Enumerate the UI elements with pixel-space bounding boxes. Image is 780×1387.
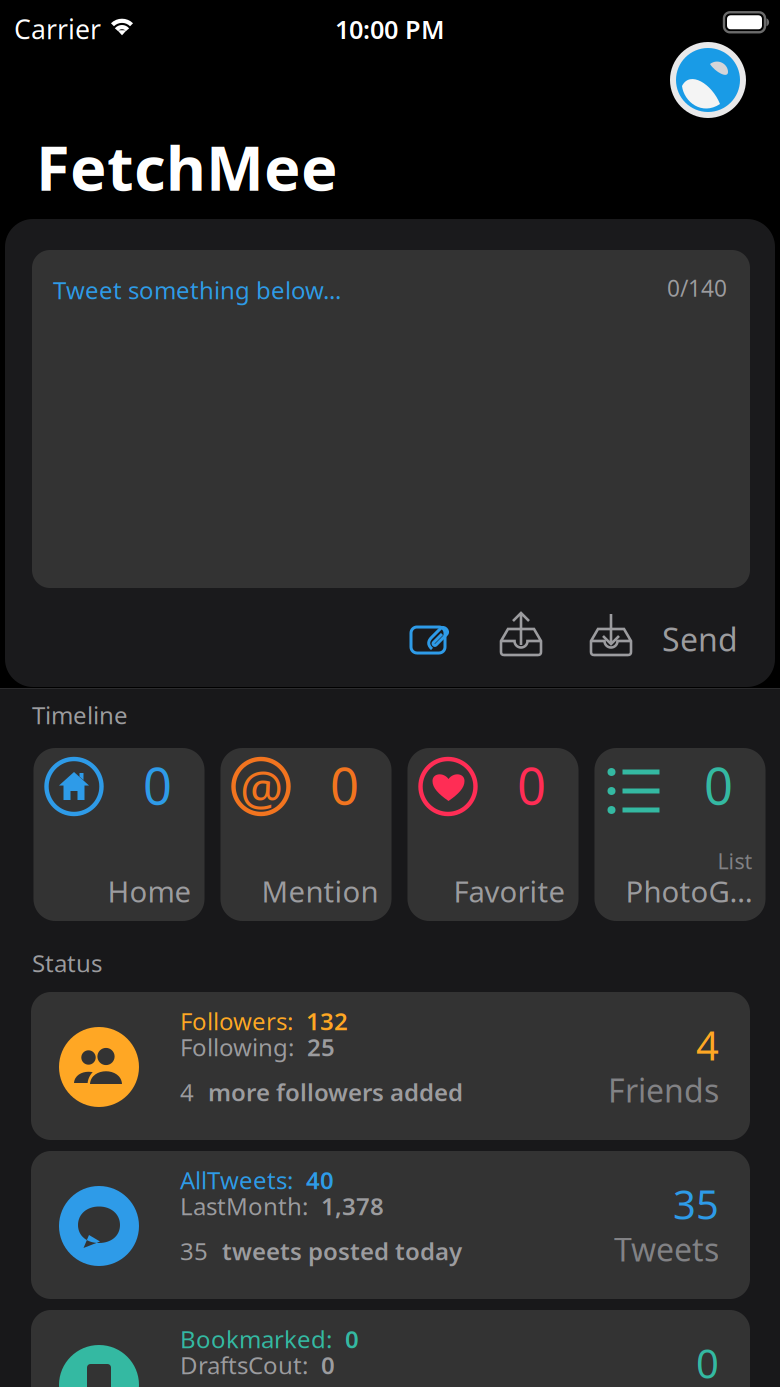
staticText: Bookmarked: [180, 1323, 332, 1355]
staticText: Send [662, 618, 738, 660]
button[interactable]: AllTweets: [31, 1151, 750, 1299]
button[interactable]: Attach media [411, 619, 453, 657]
button[interactable]: Bookmarked: [31, 1310, 750, 1387]
staticText: Mention [261, 871, 378, 910]
staticText: 4 [696, 1018, 719, 1071]
staticText: Followers: [180, 1005, 293, 1037]
staticText: Tweet something below... [53, 274, 341, 306]
staticText: 25 [307, 1031, 335, 1063]
button[interactable]: 0 [594, 748, 765, 921]
button[interactable]: Account [670, 42, 746, 118]
staticText: Favorite [453, 871, 565, 910]
button[interactable]: @ [220, 748, 391, 921]
staticText: 10:00 PM [335, 12, 445, 46]
staticText: Status [32, 947, 102, 979]
staticText: 0 [321, 1349, 335, 1381]
staticText: LastMonth: [180, 1190, 308, 1222]
staticText: Following: [180, 1031, 294, 1063]
button[interactable]: 0 [407, 748, 578, 921]
staticText: 40 [306, 1164, 334, 1196]
staticText: PhotoG… [625, 871, 752, 910]
staticText: @ [240, 755, 283, 819]
staticText: 35 [180, 1235, 208, 1267]
staticText: DraftsCout: [180, 1349, 308, 1381]
button[interactable]: 0 [33, 748, 204, 921]
staticText: tweets posted today [222, 1235, 462, 1267]
staticText: AllTweets: [180, 1164, 293, 1196]
staticText: Friends [608, 1069, 719, 1111]
staticText: 0 [517, 751, 546, 819]
button[interactable]: Send [628, 616, 738, 662]
staticText: 0/140 [667, 273, 727, 303]
staticText: List [717, 847, 752, 875]
staticText: 4 [180, 1076, 194, 1108]
staticText: 132 [306, 1005, 348, 1037]
staticText: 0 [696, 1336, 719, 1387]
button[interactable]: Followers: [31, 992, 750, 1140]
staticText: 1,378 [321, 1190, 384, 1222]
button[interactable]: Export draft [495, 604, 551, 664]
staticText: 35 [673, 1177, 719, 1230]
staticText: 0 [704, 751, 733, 819]
staticText: more followers added [208, 1076, 463, 1108]
staticText: Timeline [32, 699, 128, 731]
staticText: 0 [345, 1323, 359, 1355]
staticText: FetchMee [36, 126, 338, 208]
staticText: 0 [330, 751, 359, 819]
staticText: Carrier [14, 11, 101, 47]
button[interactable]: Import draft [585, 604, 641, 664]
staticText: Home [107, 871, 191, 910]
staticText: Tweets [614, 1228, 719, 1270]
staticText: 0 [143, 751, 172, 819]
